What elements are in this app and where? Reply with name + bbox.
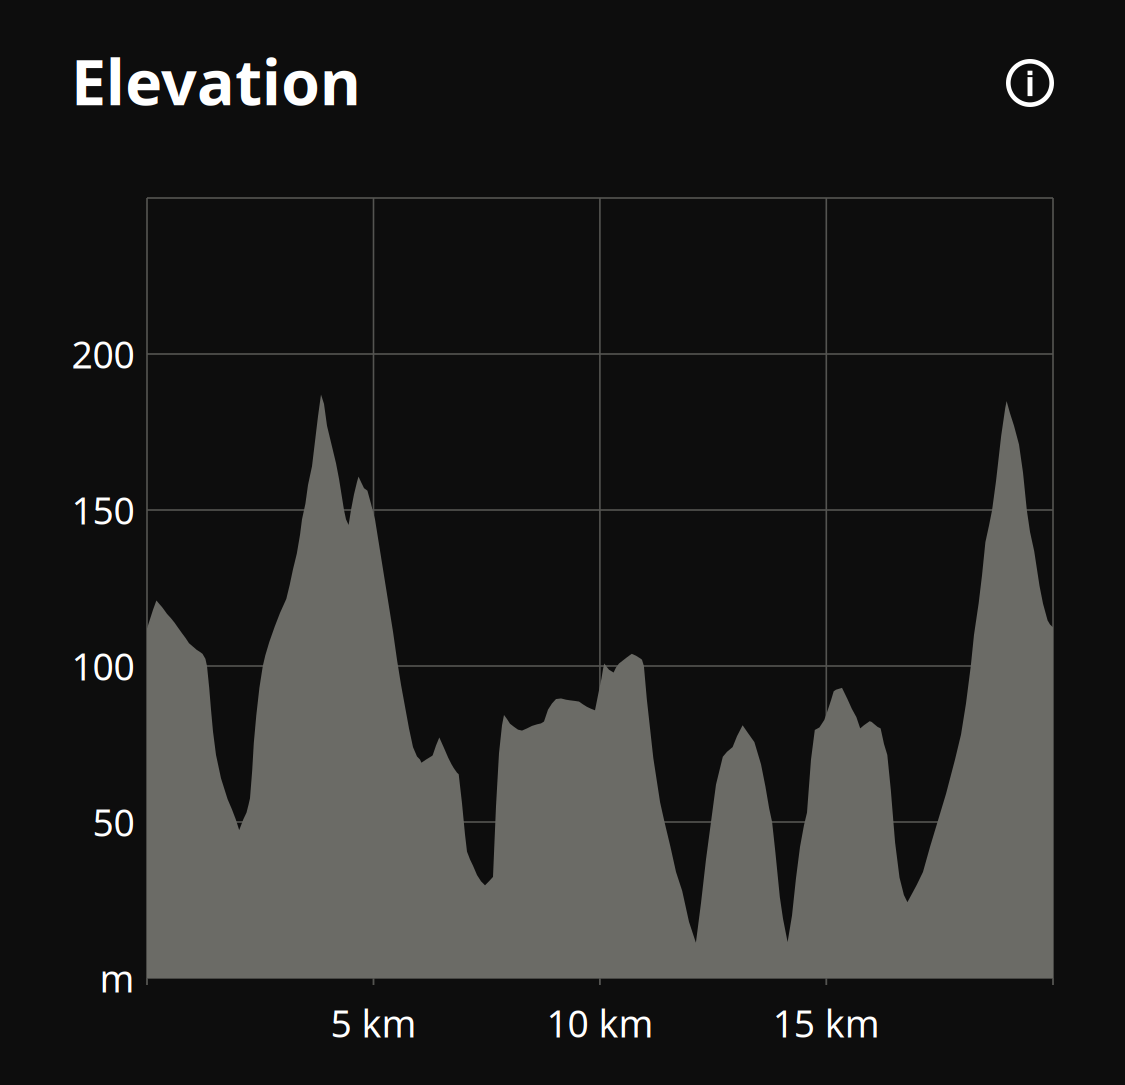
staticText: 5 km	[330, 998, 416, 1048]
staticText: 15 km	[773, 998, 880, 1048]
staticText: 100	[71, 641, 134, 691]
staticText: 50	[92, 797, 134, 847]
staticText: 200	[71, 329, 134, 379]
staticText: Elevation	[71, 39, 361, 123]
staticText: 10 km	[546, 998, 653, 1048]
button[interactable]: About elevation	[1002, 55, 1058, 111]
staticText: 150	[71, 485, 134, 535]
staticText: m	[99, 953, 134, 1003]
